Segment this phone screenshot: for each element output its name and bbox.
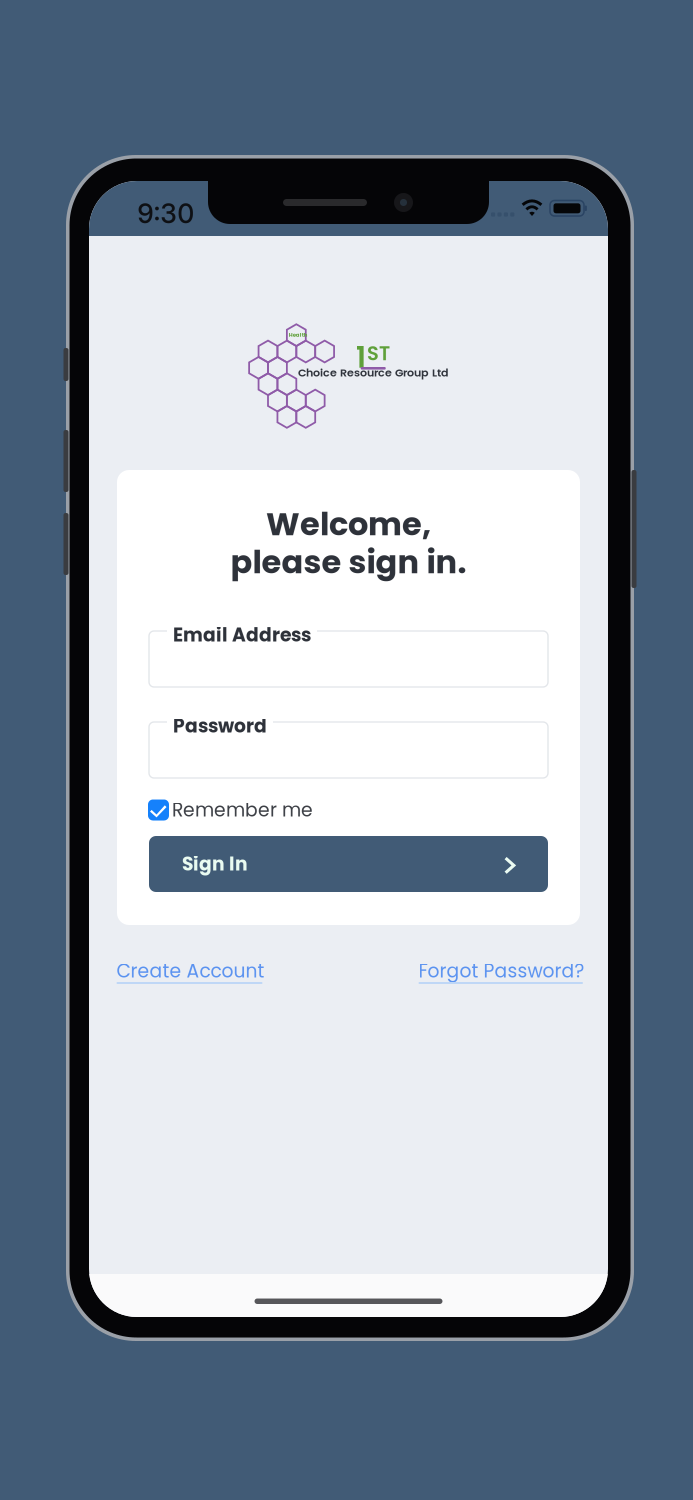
staticText: Welcome, [266, 502, 431, 546]
staticText: Choice Resource Group Ltd [298, 365, 449, 380]
staticText: Password [173, 713, 267, 739]
button[interactable]: Sign In [149, 836, 548, 892]
staticText: Remember me [172, 797, 313, 823]
staticText: Sign In [182, 851, 248, 877]
button[interactable]: Forgot Password? [418, 958, 583, 986]
button[interactable]: Create Account [116, 958, 262, 986]
staticText: Forgot Password? [418, 958, 584, 984]
staticText: ST [367, 340, 390, 367]
staticText: 9:30 [137, 197, 194, 230]
staticText: Email Address [173, 622, 311, 648]
staticText: 1 [355, 337, 366, 378]
staticText: Health [289, 331, 308, 339]
button[interactable]: Remember me checkbox [148, 799, 169, 820]
staticText: please sign in. [230, 540, 466, 584]
staticText: Create Account [116, 958, 264, 984]
